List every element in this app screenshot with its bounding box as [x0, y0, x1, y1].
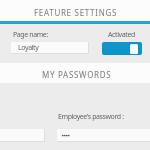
staticText: Page name: [13, 30, 48, 40]
staticText: Loyalty [18, 43, 39, 53]
button[interactable]: Activated switch [102, 42, 142, 55]
staticText: FEATURE SETTINGS [34, 7, 118, 18]
button[interactable]: Page name [11, 42, 88, 53]
staticText: Employee's password : [58, 112, 124, 122]
button[interactable]: Employee's password [57, 129, 150, 141]
staticText: MY PASSWORDS [42, 69, 112, 80]
staticText: Activated [108, 30, 135, 40]
